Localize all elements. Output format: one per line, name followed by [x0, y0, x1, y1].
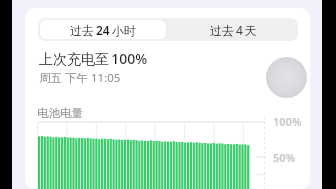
staticText: 50%	[273, 150, 296, 165]
button[interactable]: 过去 24 小时	[38, 18, 168, 41]
staticText: 过去 4 天	[210, 22, 257, 38]
staticText: 电池电量	[37, 106, 83, 120]
staticText: 100%	[273, 114, 302, 129]
staticText: 上次充电至 100%	[39, 49, 148, 68]
button[interactable]: 过去 4 天	[168, 18, 298, 41]
staticText: 过去 24 小时	[70, 22, 136, 38]
button[interactable]: Battery level ring	[266, 57, 307, 98]
staticText: 周五 下午 11:05	[39, 70, 121, 86]
